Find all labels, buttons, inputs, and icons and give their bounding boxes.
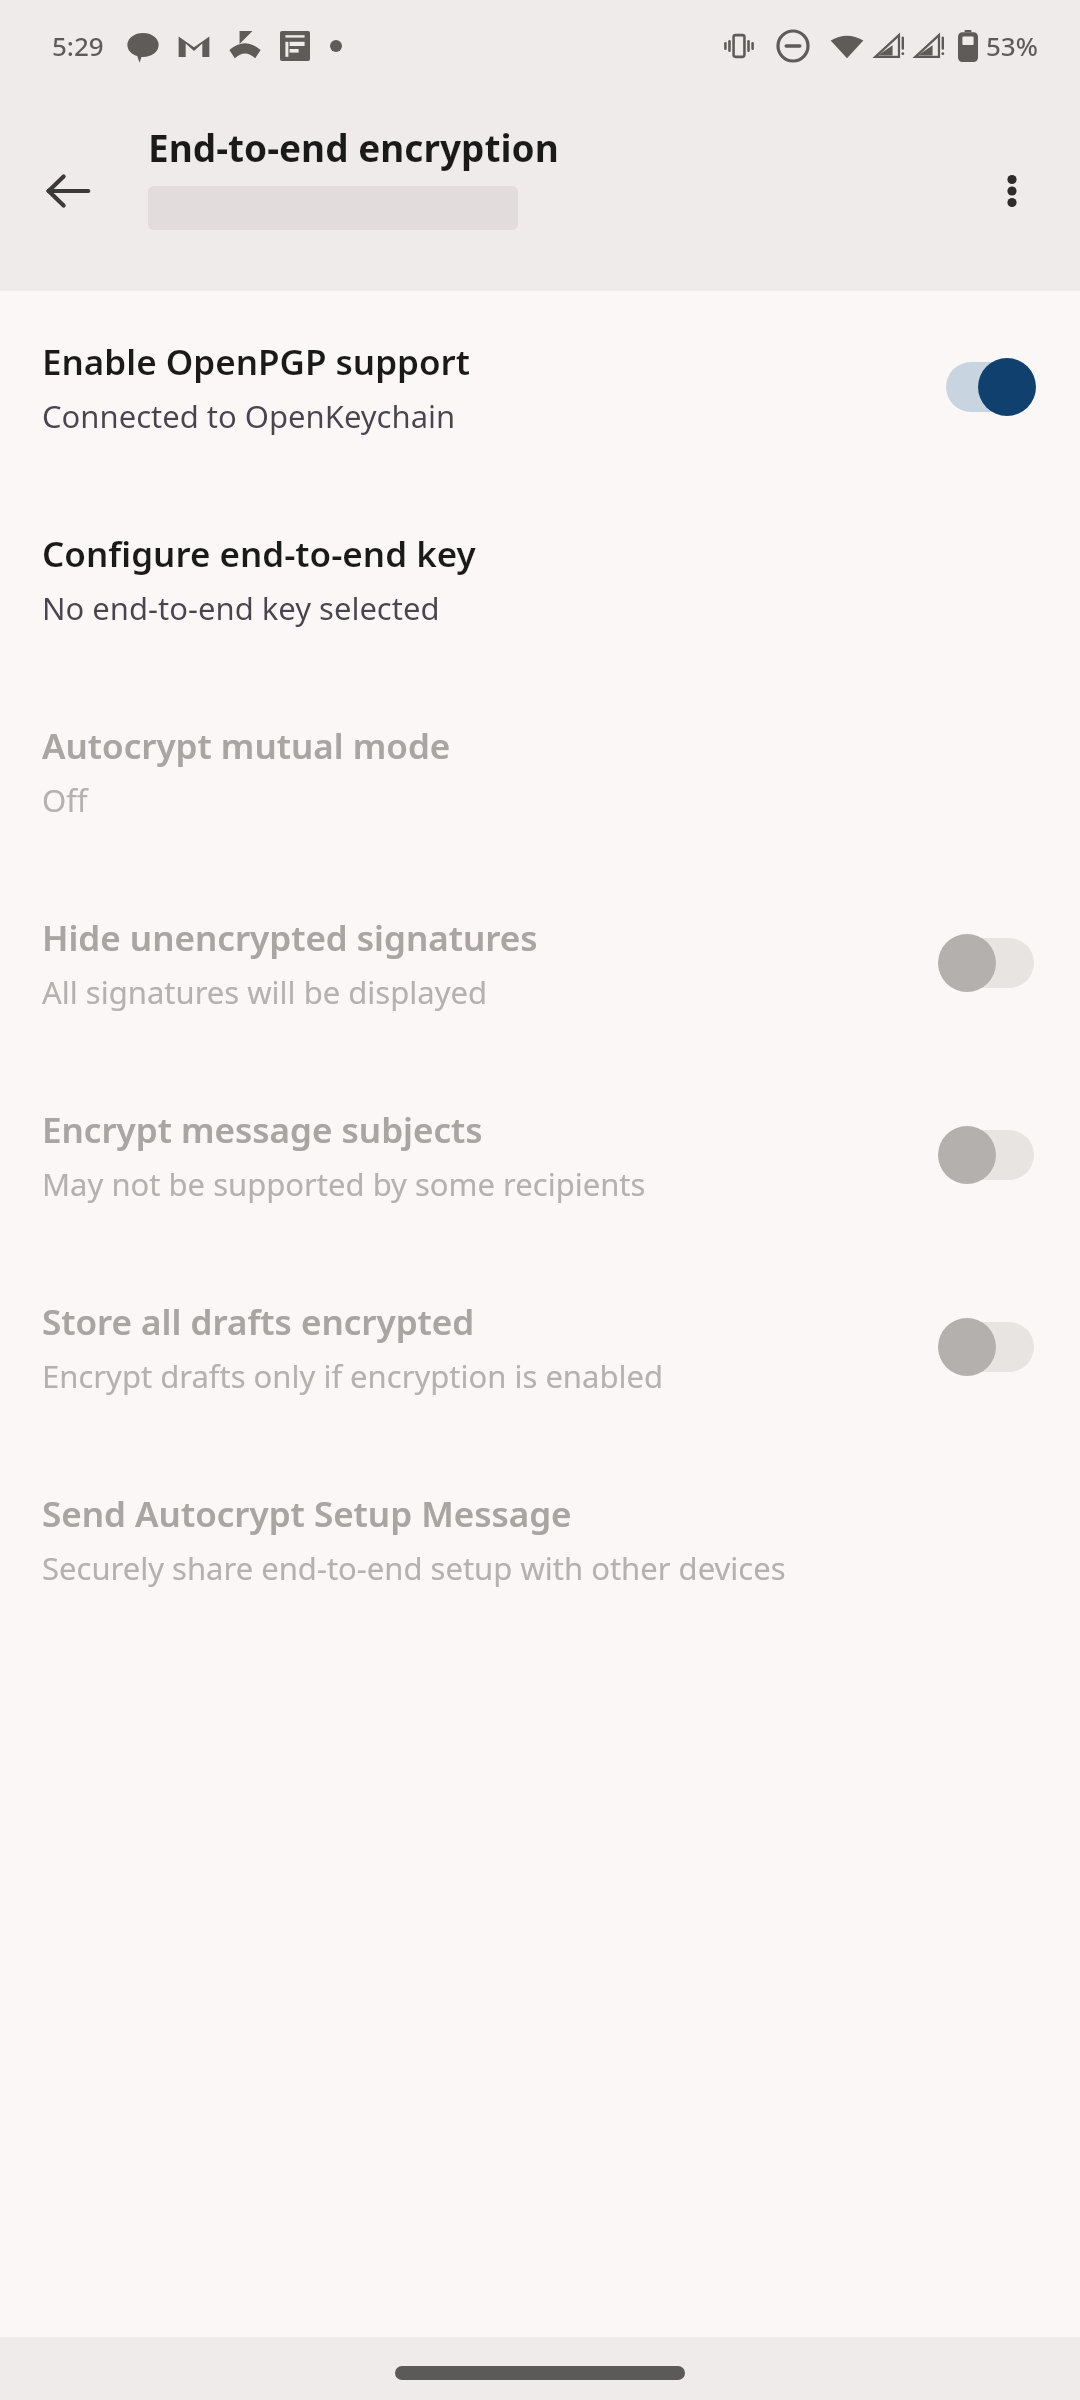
staticText: 53%	[986, 28, 1038, 63]
staticText: Send Autocrypt Setup Message	[42, 1490, 572, 1538]
staticText: Encrypt drafts only if encryption is ena…	[42, 1355, 664, 1397]
button[interactable]: Off	[942, 1122, 1038, 1188]
staticText: No end-to-end key selected	[42, 587, 440, 629]
button[interactable]: Send Autocrypt Setup Message	[0, 1443, 1080, 1635]
button[interactable]: More options	[970, 149, 1054, 233]
staticText: End-to-end encryption	[148, 122, 559, 172]
button[interactable]: Store all drafts encrypted	[0, 1251, 1080, 1443]
button[interactable]: Encrypt message subjects	[0, 1059, 1080, 1251]
button[interactable]: Off	[942, 930, 1038, 996]
staticText: Hide unencrypted signatures	[42, 914, 538, 962]
staticText: Connected to OpenKeychain	[42, 395, 456, 437]
staticText: Enable OpenPGP support	[42, 338, 470, 386]
staticText: May not be supported by some recipients	[42, 1163, 646, 1205]
button[interactable]: Back	[26, 149, 110, 233]
button[interactable]: On	[942, 354, 1038, 420]
button[interactable]: Autocrypt mutual mode	[0, 675, 1080, 867]
button[interactable]: Enable OpenPGP support	[0, 291, 1080, 483]
staticText: 5:29	[52, 28, 104, 63]
button[interactable]: Configure end-to-end key	[0, 483, 1080, 675]
staticText: Off	[42, 779, 88, 821]
button[interactable]: Hide unencrypted signatures	[0, 867, 1080, 1059]
staticText: Configure end-to-end key	[42, 530, 476, 578]
staticText: Encrypt message subjects	[42, 1106, 483, 1154]
button[interactable]: Off	[942, 1314, 1038, 1380]
staticText: All signatures will be displayed	[42, 971, 488, 1013]
staticText: Store all drafts encrypted	[42, 1298, 475, 1346]
staticText: Securely share end-to-end setup with oth…	[42, 1547, 786, 1589]
staticText: Autocrypt mutual mode	[42, 722, 451, 770]
